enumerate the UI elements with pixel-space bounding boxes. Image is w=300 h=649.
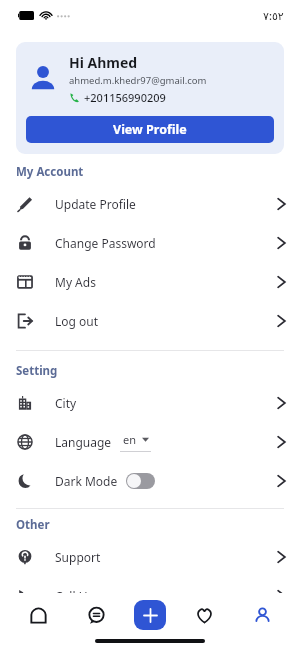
button[interactable]: Profile	[243, 597, 281, 633]
staticText: ahmed.m.khedr97@gmail.com	[69, 74, 207, 87]
button[interactable]: Call Us	[0, 576, 300, 615]
button[interactable]: Messages	[77, 597, 115, 633]
staticText: Log out	[55, 313, 99, 329]
button[interactable]: Support	[0, 537, 300, 576]
staticText: en	[123, 432, 137, 447]
button[interactable]: Language	[0, 422, 300, 461]
staticText: Setting	[16, 363, 58, 379]
staticText: Language	[55, 434, 112, 450]
staticText: Support	[55, 549, 101, 565]
staticText: City	[55, 395, 77, 411]
staticText: Dark Mode	[55, 473, 118, 489]
button[interactable]: Add	[134, 600, 166, 630]
staticText: Call Us	[55, 588, 94, 604]
button[interactable]: Favorites	[185, 597, 223, 633]
button[interactable]: View Profile	[26, 116, 274, 143]
staticText: Hi Ahmed	[69, 53, 138, 72]
staticText: +201156990209	[84, 90, 166, 105]
button[interactable]: City	[0, 383, 300, 422]
button[interactable]: Update Profile	[0, 184, 300, 223]
button[interactable]: en	[120, 432, 151, 452]
staticText: My Ads	[55, 274, 96, 290]
staticText: Other	[16, 517, 50, 533]
button[interactable]: Log out	[0, 301, 300, 340]
staticText: ٧:٥٢	[263, 8, 284, 23]
staticText: My Account	[16, 164, 84, 180]
staticText: Change Password	[55, 235, 156, 251]
button[interactable]: Change Password	[0, 223, 300, 262]
button[interactable]: Dark Mode toggle	[126, 473, 155, 489]
staticText: Update Profile	[55, 196, 136, 212]
button[interactable]: Dark Mode	[0, 461, 300, 500]
button[interactable]: Home	[19, 597, 57, 633]
button[interactable]: My Ads	[0, 262, 300, 301]
staticText: View Profile	[113, 121, 187, 138]
